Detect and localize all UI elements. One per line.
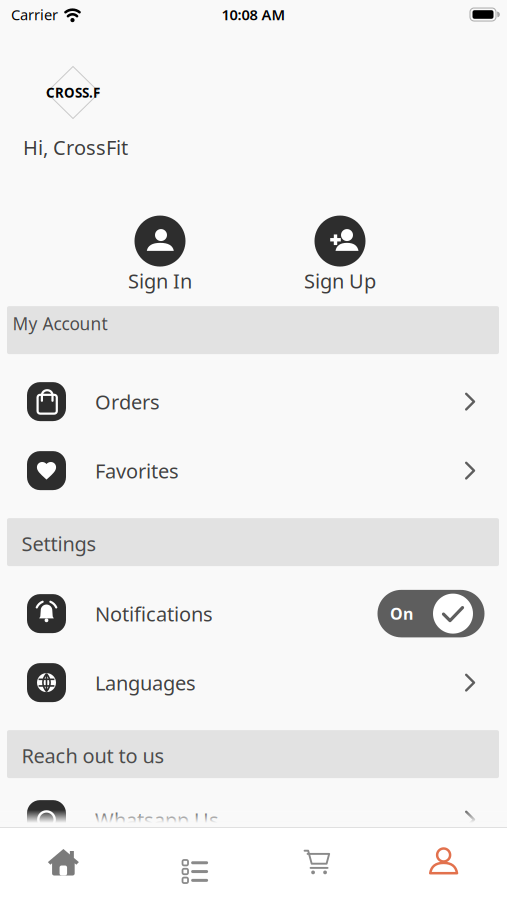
staticText: Orders (95, 388, 160, 415)
button[interactable]: Sign Up (290, 216, 390, 294)
button[interactable]: Notifications On (377, 590, 484, 637)
staticText: On (390, 603, 413, 624)
button[interactable]: Languages (0, 648, 507, 717)
button[interactable]: Favorites (0, 436, 507, 505)
staticText: CROSS.F (46, 84, 100, 101)
staticText: Reach out to us (21, 742, 164, 769)
button[interactable]: Orders (127, 828, 254, 900)
staticText: My Account (12, 312, 107, 335)
staticText: Languages (95, 669, 196, 696)
staticText: Hi, CrossFit (23, 134, 128, 161)
button[interactable]: Profile (380, 828, 507, 900)
staticText: Whatsapp Us (95, 806, 219, 833)
button[interactable]: Notifications (0, 579, 507, 648)
button[interactable]: Sign In (110, 216, 210, 294)
staticText: Sign Up (304, 268, 376, 294)
staticText: Favorites (95, 457, 179, 484)
staticText: 10:08 AM (221, 5, 285, 24)
button[interactable]: Cart (253, 828, 380, 900)
staticText: Sign In (128, 268, 192, 294)
button[interactable]: Orders (0, 367, 507, 436)
staticText: Notifications (95, 600, 213, 627)
button[interactable]: Whatsapp Us (0, 785, 507, 854)
staticText: Carrier (11, 5, 58, 24)
staticText: Settings (21, 530, 96, 557)
button[interactable]: Home (0, 828, 127, 900)
